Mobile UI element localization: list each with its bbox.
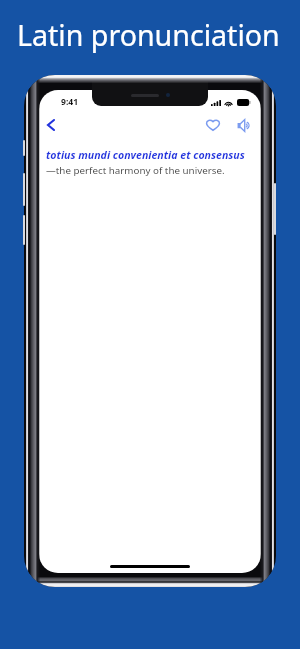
staticText: —the perfect harmony of the universe.: [46, 164, 225, 177]
button[interactable]: Play pronunciation: [233, 114, 255, 136]
staticText: 9:41: [61, 96, 79, 108]
button[interactable]: Favorite: [202, 114, 224, 136]
staticText: Latin pronunciation: [17, 15, 280, 54]
button[interactable]: Back: [41, 115, 61, 135]
staticText: totius mundi convenientia et consensus: [46, 148, 245, 162]
